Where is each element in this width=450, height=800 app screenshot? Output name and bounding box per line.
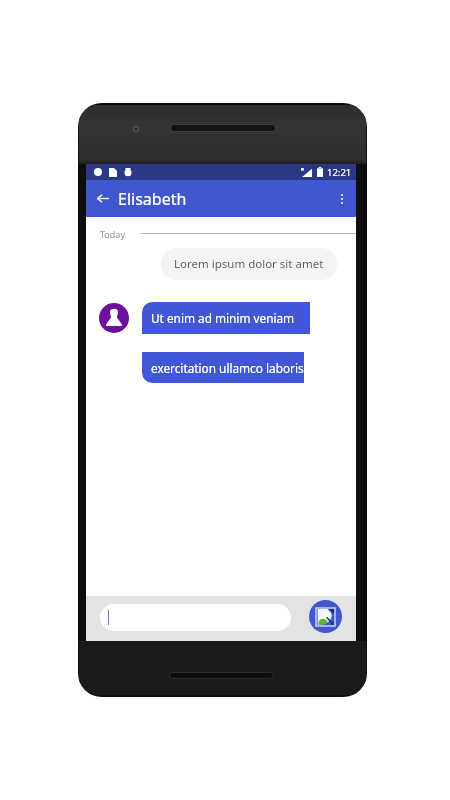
staticText: Lorem ipsum dolor sit amet <box>174 256 324 272</box>
staticText: 12:21 <box>327 166 352 179</box>
button[interactable]: Back <box>93 188 113 208</box>
button[interactable]: Send image <box>309 600 342 633</box>
button[interactable] <box>100 604 291 631</box>
staticText: Today <box>100 228 125 240</box>
button[interactable]: exercitation ullamco laboris <box>142 352 304 383</box>
button[interactable]: More options <box>332 189 352 209</box>
button[interactable]: Contact avatar <box>99 303 129 333</box>
staticText: Elisabeth <box>118 188 187 210</box>
staticText: exercitation ullamco laboris <box>151 360 304 376</box>
button[interactable]: Lorem ipsum dolor sit amet <box>161 248 337 280</box>
button[interactable]: Ut enim ad minim veniam <box>142 302 310 334</box>
staticText: Ut enim ad minim veniam <box>151 310 295 326</box>
